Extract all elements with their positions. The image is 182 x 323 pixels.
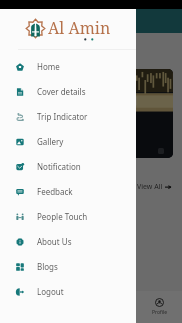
button[interactable]: Feedback xyxy=(0,179,136,204)
staticText: Blogs xyxy=(37,261,58,272)
staticText: People Touch xyxy=(37,211,88,222)
staticText: Logout xyxy=(37,286,64,297)
staticText: Al Amin xyxy=(48,17,111,39)
staticText: Profile xyxy=(152,309,168,316)
button[interactable]: Profile xyxy=(137,291,182,323)
button[interactable]: Bookmark xyxy=(158,148,164,154)
button[interactable]: Home xyxy=(0,54,136,79)
staticText: View All xyxy=(137,182,163,192)
button[interactable]: About Us xyxy=(0,229,136,254)
button[interactable]: Notification xyxy=(0,154,136,179)
staticText: Notification xyxy=(37,161,81,172)
button[interactable]: Logout xyxy=(0,279,136,304)
staticText: Trip Indicator xyxy=(37,111,88,122)
button[interactable]: Blogs xyxy=(0,254,136,279)
button[interactable]: Cover details xyxy=(0,79,136,104)
staticText: Cover details xyxy=(37,86,86,97)
staticText: About Us xyxy=(37,236,72,247)
button[interactable]: View All xyxy=(137,182,171,192)
staticText: Home xyxy=(37,61,60,72)
button[interactable]: Trip Indicator xyxy=(0,104,136,129)
button[interactable]: Gallery xyxy=(0,129,136,154)
button[interactable]: People Touch xyxy=(0,204,136,229)
staticText: Gallery xyxy=(37,136,64,147)
staticText: Feedback xyxy=(37,186,73,197)
